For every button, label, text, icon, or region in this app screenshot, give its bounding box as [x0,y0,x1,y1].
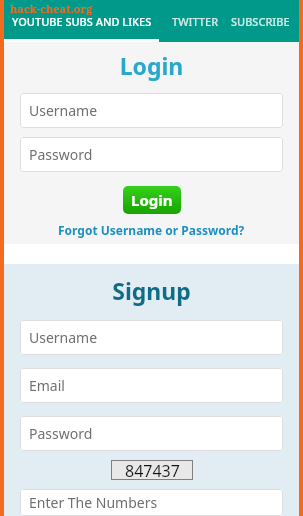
staticText: Username [29,328,98,347]
button[interactable]: YOUTUBE SUBS AND LIKES [4,0,159,42]
button[interactable]: Password [20,416,283,451]
other: Captcha image [111,460,193,480]
staticText: 847437 [125,460,180,480]
button[interactable]: Login [123,186,181,214]
staticText: Password [29,145,93,164]
button[interactable]: Enter The Numbers [20,489,283,516]
staticText: Login [131,190,173,210]
staticText: Email [29,376,65,395]
staticText: SUBSCRIBE [231,14,290,29]
button[interactable]: SUBSCRIBE [231,0,299,42]
staticText: Password [29,424,93,443]
staticText: Enter The Numbers [29,493,158,512]
button[interactable]: Username [20,93,283,128]
button[interactable]: Password [20,137,283,172]
button[interactable]: TWITTER [159,0,231,42]
staticText: Login [20,50,283,81]
staticText: TWITTER [172,14,219,29]
staticText: Signup [20,275,283,306]
button[interactable]: Email [20,368,283,403]
button[interactable]: Username [20,320,283,355]
staticText: Forgot Username or Password? [58,222,245,238]
button[interactable]: Forgot Username or Password? [20,222,283,238]
staticText: Username [29,101,98,120]
staticText: hack-cheat.org [10,1,93,16]
staticText: YOUTUBE SUBS AND LIKES [12,14,152,29]
